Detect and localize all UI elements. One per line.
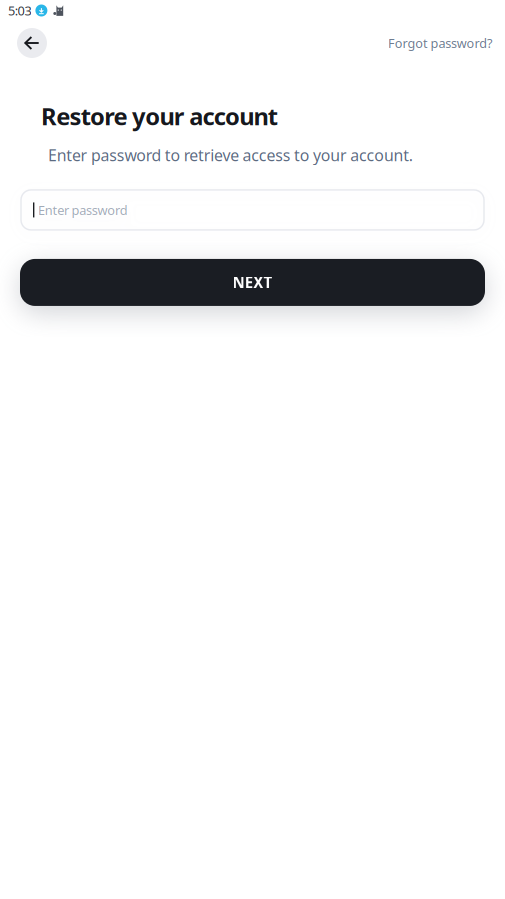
staticText: Enter password to retrieve access to you…	[48, 144, 413, 166]
staticText: 5:03	[8, 2, 31, 19]
button[interactable]: Forgot password?	[388, 34, 492, 52]
staticText: NEXT	[233, 272, 272, 293]
button[interactable]: NEXT	[20, 259, 485, 306]
staticText: Enter password	[38, 201, 128, 219]
button[interactable]: Back	[17, 28, 47, 58]
staticText: Restore your account	[41, 100, 278, 132]
staticText: Forgot password?	[388, 34, 492, 52]
